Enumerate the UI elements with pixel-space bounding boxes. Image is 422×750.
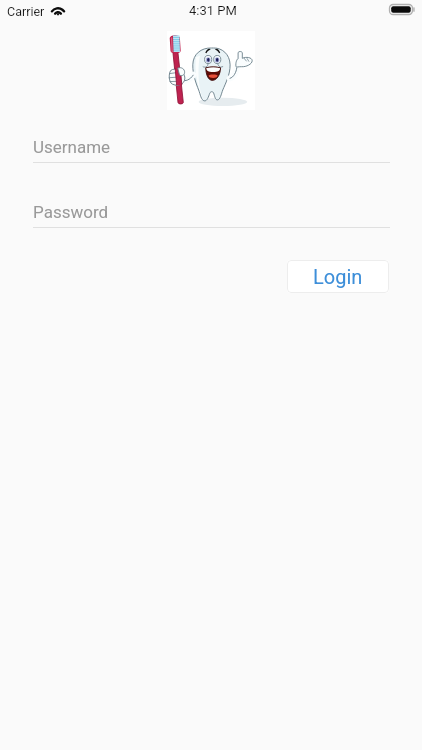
staticText: Username — [33, 137, 111, 157]
staticText: Carrier — [7, 4, 45, 19]
button[interactable]: Password — [33, 196, 390, 228]
button[interactable]: Login — [287, 260, 389, 293]
other: Wi-Fi signal — [50, 4, 66, 16]
button[interactable]: Username — [33, 131, 390, 163]
staticText: Password — [33, 202, 109, 222]
other: Dental clinic logo — [167, 31, 255, 110]
staticText: Login — [313, 265, 363, 288]
staticText: 4:31 PM — [189, 3, 237, 18]
